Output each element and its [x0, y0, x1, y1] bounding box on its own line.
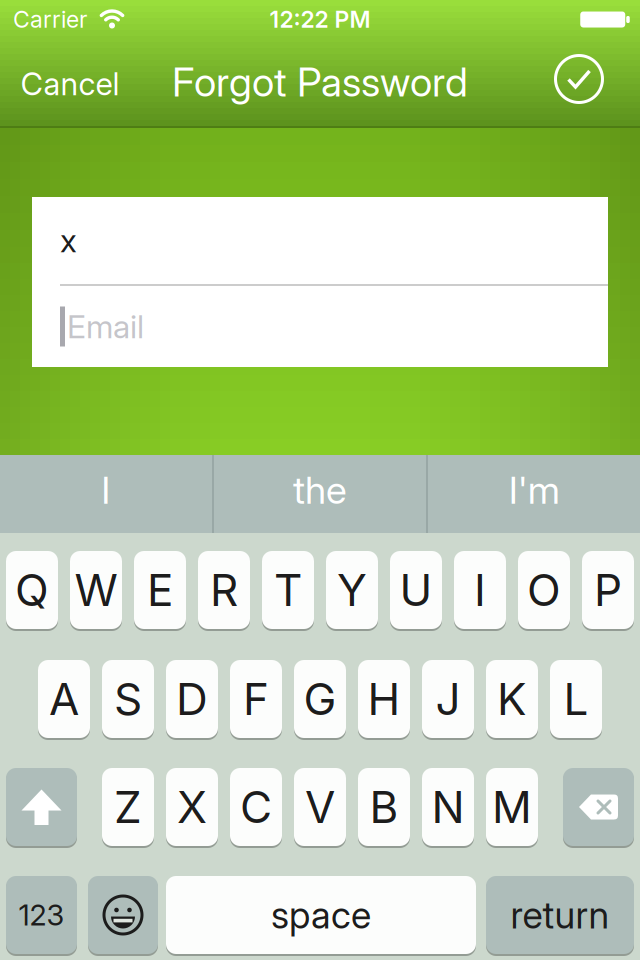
- button[interactable]: O: [518, 551, 570, 629]
- button[interactable]: N: [422, 768, 474, 846]
- button[interactable]: U: [390, 551, 442, 629]
- staticText: K: [497, 672, 527, 726]
- button[interactable]: W: [70, 551, 122, 629]
- button[interactable]: Email: [32, 286, 608, 367]
- staticText: N: [431, 780, 464, 834]
- staticText: 12:22 PM: [269, 6, 370, 33]
- staticText: M: [492, 780, 532, 834]
- staticText: C: [240, 780, 272, 834]
- button[interactable]: Delete: [563, 768, 634, 846]
- button[interactable]: K: [486, 660, 538, 738]
- button[interactable]: J: [422, 660, 474, 738]
- button[interactable]: V: [294, 768, 346, 846]
- button[interactable]: L: [550, 660, 602, 738]
- button[interactable]: x: [32, 197, 608, 284]
- staticText: I: [474, 563, 486, 617]
- staticText: S: [114, 672, 142, 726]
- staticText: V: [305, 780, 335, 834]
- button[interactable]: S: [102, 660, 154, 738]
- button[interactable]: X: [166, 768, 218, 846]
- staticText: X: [177, 780, 207, 834]
- button[interactable]: D: [166, 660, 218, 738]
- staticText: return: [510, 893, 609, 937]
- button[interactable]: Z: [102, 768, 154, 846]
- staticText: D: [176, 672, 208, 726]
- staticText: B: [369, 780, 398, 834]
- staticText: Z: [114, 780, 142, 834]
- button[interactable]: M: [486, 768, 538, 846]
- button[interactable]: F: [230, 660, 282, 738]
- staticText: H: [367, 672, 400, 726]
- staticText: L: [563, 672, 588, 726]
- button[interactable]: A: [38, 660, 90, 738]
- button[interactable]: space: [166, 876, 476, 954]
- button[interactable]: B: [358, 768, 410, 846]
- button[interactable]: P: [582, 551, 634, 629]
- button[interactable]: I: [454, 551, 506, 629]
- staticText: I'm: [509, 467, 560, 513]
- button[interactable]: Y: [326, 551, 378, 629]
- button[interactable]: Shift: [6, 768, 77, 846]
- staticText: Carrier: [13, 6, 87, 33]
- staticText: space: [271, 893, 371, 937]
- staticText: the: [293, 467, 347, 513]
- staticText: Cancel: [20, 65, 119, 103]
- staticText: Email: [67, 307, 144, 346]
- button[interactable]: T: [262, 551, 314, 629]
- button[interactable]: 123: [6, 876, 77, 954]
- staticText: 123: [18, 897, 64, 933]
- button[interactable]: R: [198, 551, 250, 629]
- staticText: R: [210, 563, 238, 617]
- staticText: J: [435, 672, 460, 726]
- staticText: G: [303, 672, 336, 726]
- staticText: O: [527, 563, 561, 617]
- button[interactable]: Cancel: [20, 65, 119, 103]
- staticText: U: [399, 563, 432, 617]
- staticText: F: [243, 672, 269, 726]
- button[interactable]: the: [214, 455, 426, 533]
- button[interactable]: C: [230, 768, 282, 846]
- staticText: T: [274, 563, 302, 617]
- staticText: W: [74, 563, 117, 617]
- staticText: A: [49, 672, 79, 726]
- button[interactable]: Emoji: [88, 876, 158, 954]
- button[interactable]: H: [358, 660, 410, 738]
- staticText: I: [101, 467, 110, 513]
- staticText: P: [594, 563, 622, 617]
- button[interactable]: E: [134, 551, 186, 629]
- button[interactable]: Q: [6, 551, 58, 629]
- button[interactable]: Done: [554, 54, 604, 104]
- button[interactable]: I'm: [428, 455, 640, 533]
- button[interactable]: return: [486, 876, 634, 954]
- staticText: Forgot Password: [172, 58, 468, 106]
- staticText: x: [60, 221, 77, 260]
- staticText: Y: [337, 563, 367, 617]
- staticText: E: [147, 563, 173, 617]
- staticText: Q: [15, 563, 49, 617]
- button[interactable]: I: [0, 455, 212, 533]
- button[interactable]: G: [294, 660, 346, 738]
